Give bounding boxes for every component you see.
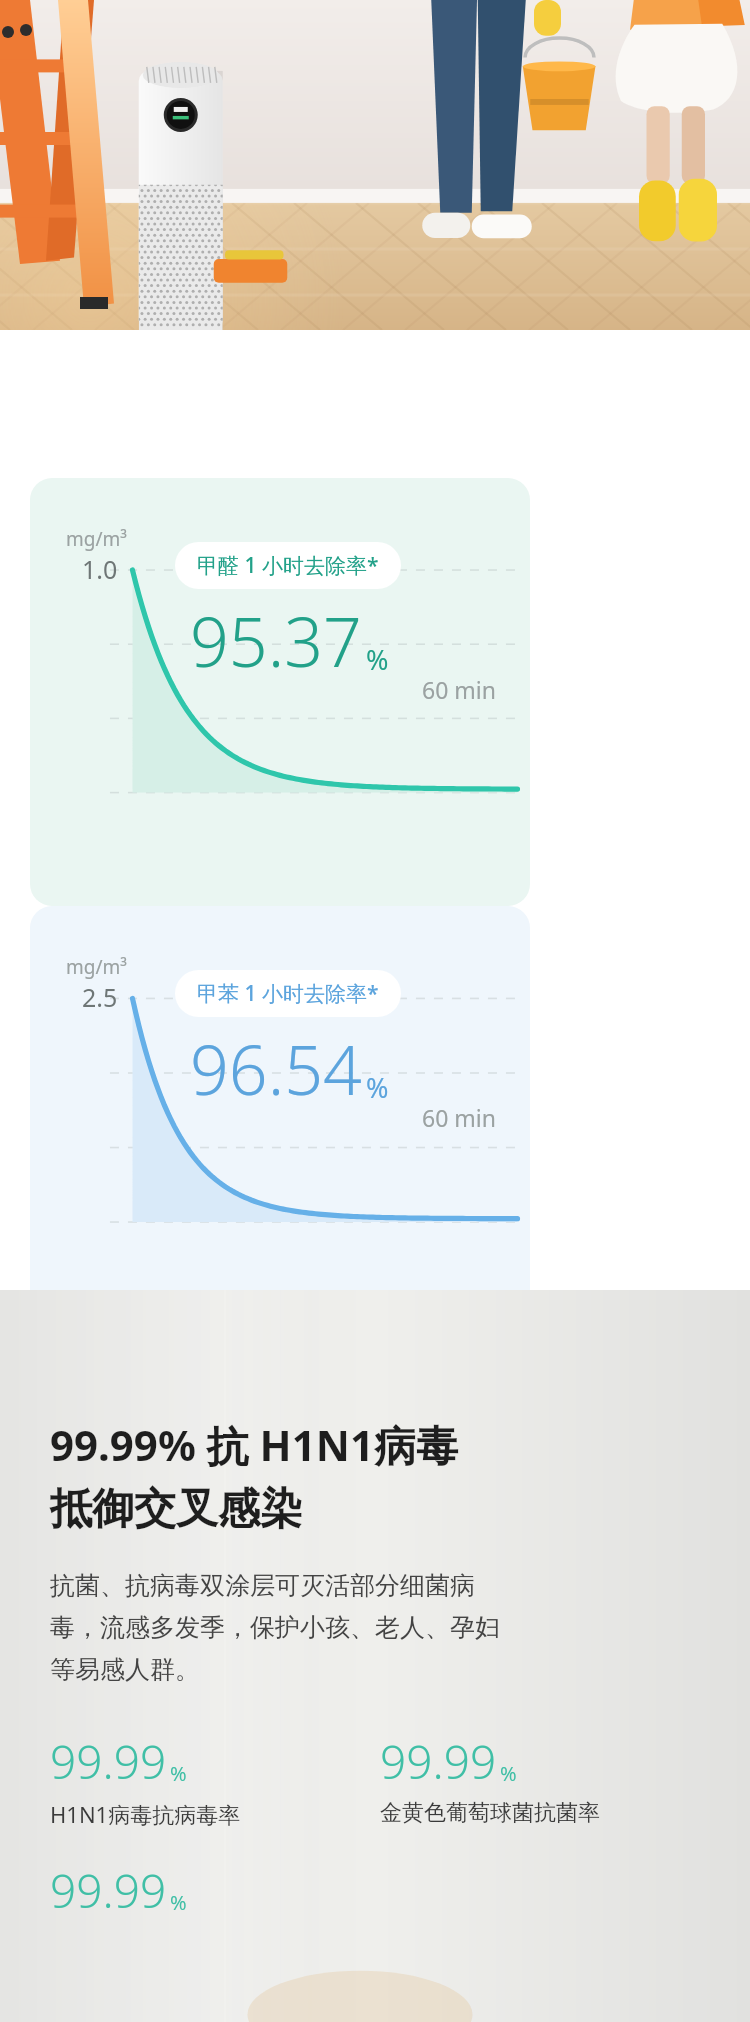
staticText: mg/m³	[66, 954, 127, 980]
staticText: 2.5	[82, 980, 118, 1014]
staticText: 99.99	[50, 1730, 167, 1793]
staticText: %	[170, 1760, 187, 1787]
button[interactable]: 甲醛 1 小时去除率*	[175, 542, 401, 589]
button[interactable]: 99.99	[50, 1730, 380, 1829]
button[interactable]: mg/m³	[30, 478, 530, 906]
staticText: 99.99% 抗 H1N1病毒	[50, 1416, 458, 1473]
button[interactable]: 99.99	[50, 1859, 380, 1922]
staticText: 1.0	[82, 552, 118, 586]
staticText: 96.54	[190, 1022, 362, 1115]
button[interactable]: 99.99	[380, 1730, 710, 1827]
button[interactable]: mg/m³	[30, 906, 530, 1336]
staticText: 甲醛 1 小时去除率*	[197, 551, 379, 580]
staticText: 99.99	[50, 1859, 167, 1922]
staticText: mg/m³	[66, 526, 127, 552]
staticText: %	[366, 1069, 389, 1106]
staticText: 甲苯 1 小时去除率*	[197, 979, 379, 1008]
staticText: 60 min	[422, 674, 496, 705]
staticText: 95.37	[190, 594, 362, 687]
staticText: 抗菌、抗病毒双涂层可灭活部分细菌病 毒，流感多发季，保护小孩、老人、孕妇 等易感…	[50, 1570, 500, 1686]
staticText: 抵御交叉感染	[50, 1483, 302, 1536]
staticText: %	[170, 1889, 187, 1916]
staticText: 金黄色葡萄球菌抗菌率	[380, 1799, 600, 1827]
staticText: H1N1病毒抗病毒率	[50, 1799, 241, 1829]
staticText: %	[500, 1760, 517, 1787]
staticText: 60 min	[422, 1102, 496, 1133]
button[interactable]: 甲苯 1 小时去除率*	[175, 970, 401, 1017]
staticText: 99.99	[380, 1730, 497, 1793]
staticText: %	[366, 641, 389, 678]
